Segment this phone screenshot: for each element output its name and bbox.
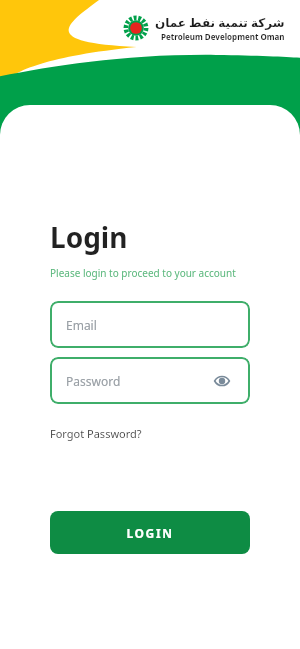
staticText: Password <box>66 373 121 389</box>
staticText: شركة تنمية نفط عمان <box>155 14 285 30</box>
staticText: Forgot Password? <box>50 426 142 441</box>
staticText: Email <box>66 317 97 333</box>
button[interactable]: Email <box>50 301 250 348</box>
button[interactable]: Forgot Password? <box>50 424 142 443</box>
staticText: LOGIN <box>126 525 174 541</box>
staticText: Petroleum Development Oman <box>161 31 285 42</box>
button[interactable]: LOGIN <box>50 511 250 554</box>
button[interactable]: Password <box>50 357 250 404</box>
staticText: Please login to proceed to your account <box>50 266 236 280</box>
button[interactable]: Show password <box>210 369 234 393</box>
staticText: Login <box>50 218 128 256</box>
